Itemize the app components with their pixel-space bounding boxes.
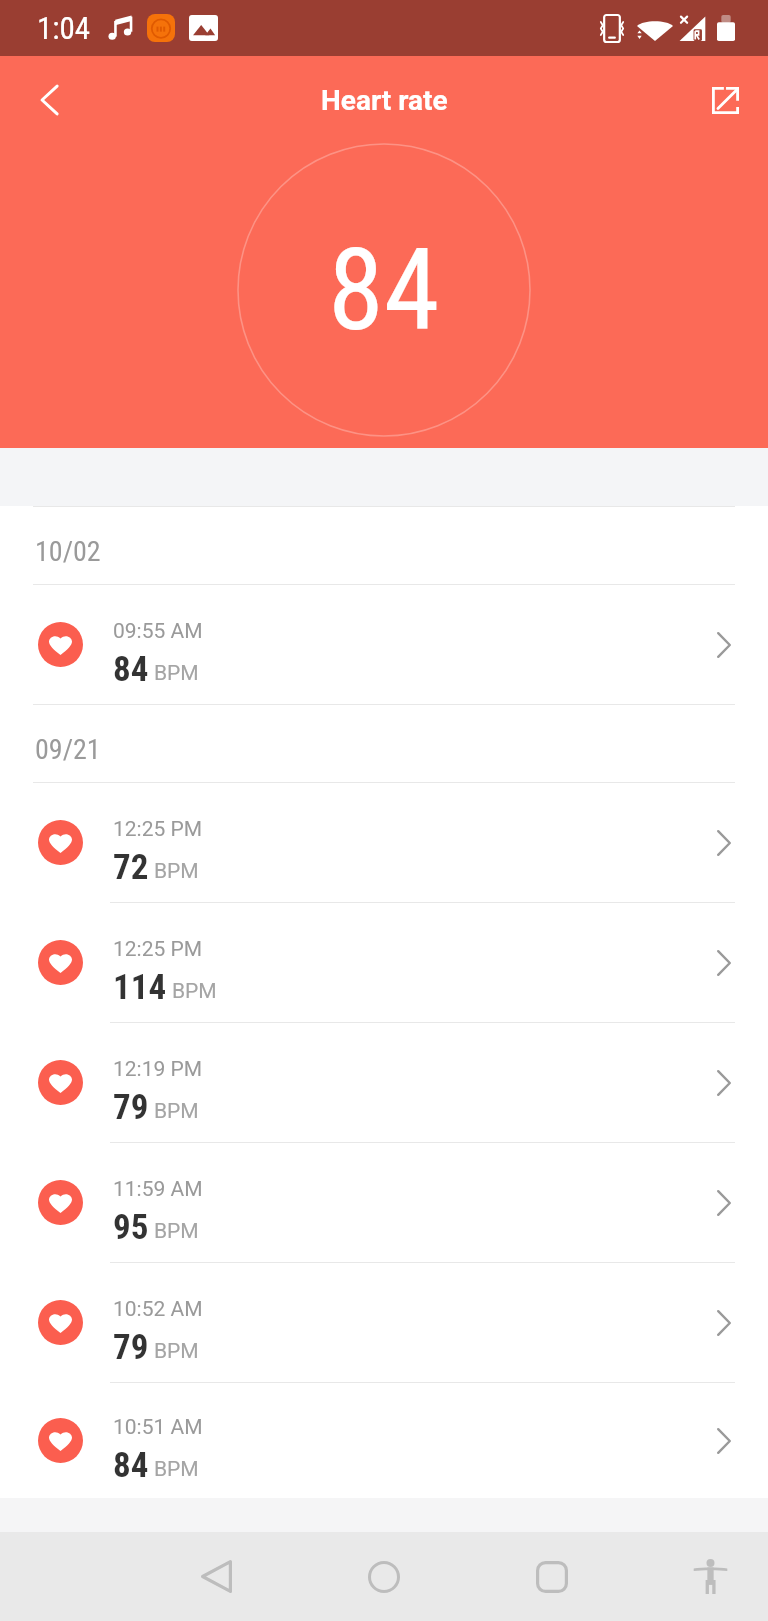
button[interactable]: 11:59 AM [0, 1143, 768, 1262]
staticText: BPM [154, 859, 199, 884]
button[interactable]: 12:19 PM [0, 1023, 768, 1142]
staticText: BPM [154, 661, 199, 686]
staticText: 11:59 AM [113, 1177, 203, 1202]
button[interactable]: Recents [510, 1532, 594, 1621]
staticText: 79 [113, 1087, 149, 1128]
staticText: 12:25 PM [113, 817, 203, 842]
staticText: 84 [328, 224, 440, 356]
staticText: 84 [113, 649, 149, 690]
staticText: 12:25 PM [113, 937, 203, 962]
button[interactable]: Open in new [704, 79, 746, 121]
button[interactable]: Home [342, 1532, 426, 1621]
staticText: BPM [154, 1099, 199, 1124]
staticText: 12:19 PM [113, 1057, 203, 1082]
staticText: 10/02 [35, 535, 101, 568]
button[interactable]: 10:51 AM [0, 1383, 768, 1498]
staticText: 95 [113, 1207, 149, 1248]
staticText: BPM [154, 1457, 199, 1482]
staticText: 10:51 AM [113, 1415, 203, 1440]
button[interactable]: 09:55 AM [0, 585, 768, 704]
staticText: Heart rate [321, 84, 448, 117]
staticText: 1:04 [37, 10, 91, 46]
button[interactable]: 10:52 AM [0, 1263, 768, 1382]
staticText: 79 [113, 1327, 149, 1368]
button[interactable]: 12:25 PM [0, 783, 768, 902]
button[interactable]: Accessibility [668, 1532, 752, 1621]
staticText: 114 [113, 967, 167, 1008]
staticText: BPM [154, 1219, 199, 1244]
staticText: 84 [113, 1445, 149, 1486]
staticText: 72 [113, 847, 149, 888]
staticText: 09/21 [35, 733, 101, 766]
staticText: 09:55 AM [113, 619, 203, 644]
staticText: 10:52 AM [113, 1297, 203, 1322]
button[interactable]: Back [20, 71, 78, 129]
button[interactable]: 12:25 PM [0, 903, 768, 1022]
button[interactable]: Back [174, 1532, 258, 1621]
staticText: BPM [172, 979, 217, 1004]
staticText: BPM [154, 1339, 199, 1364]
